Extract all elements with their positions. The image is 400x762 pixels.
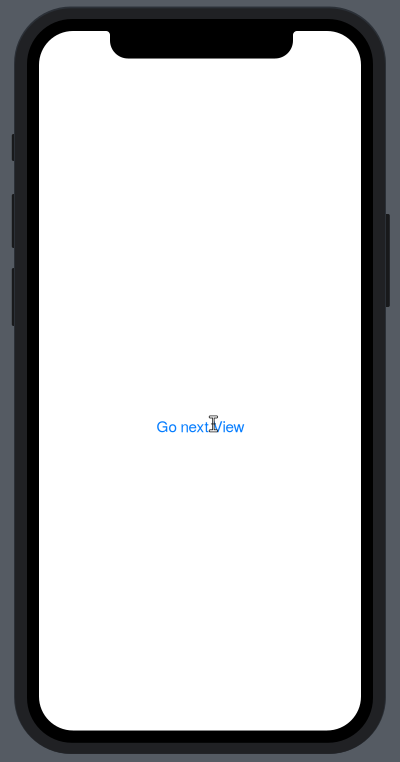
button[interactable]: Go next View: [156, 415, 244, 437]
staticText: Go next View: [156, 415, 244, 437]
